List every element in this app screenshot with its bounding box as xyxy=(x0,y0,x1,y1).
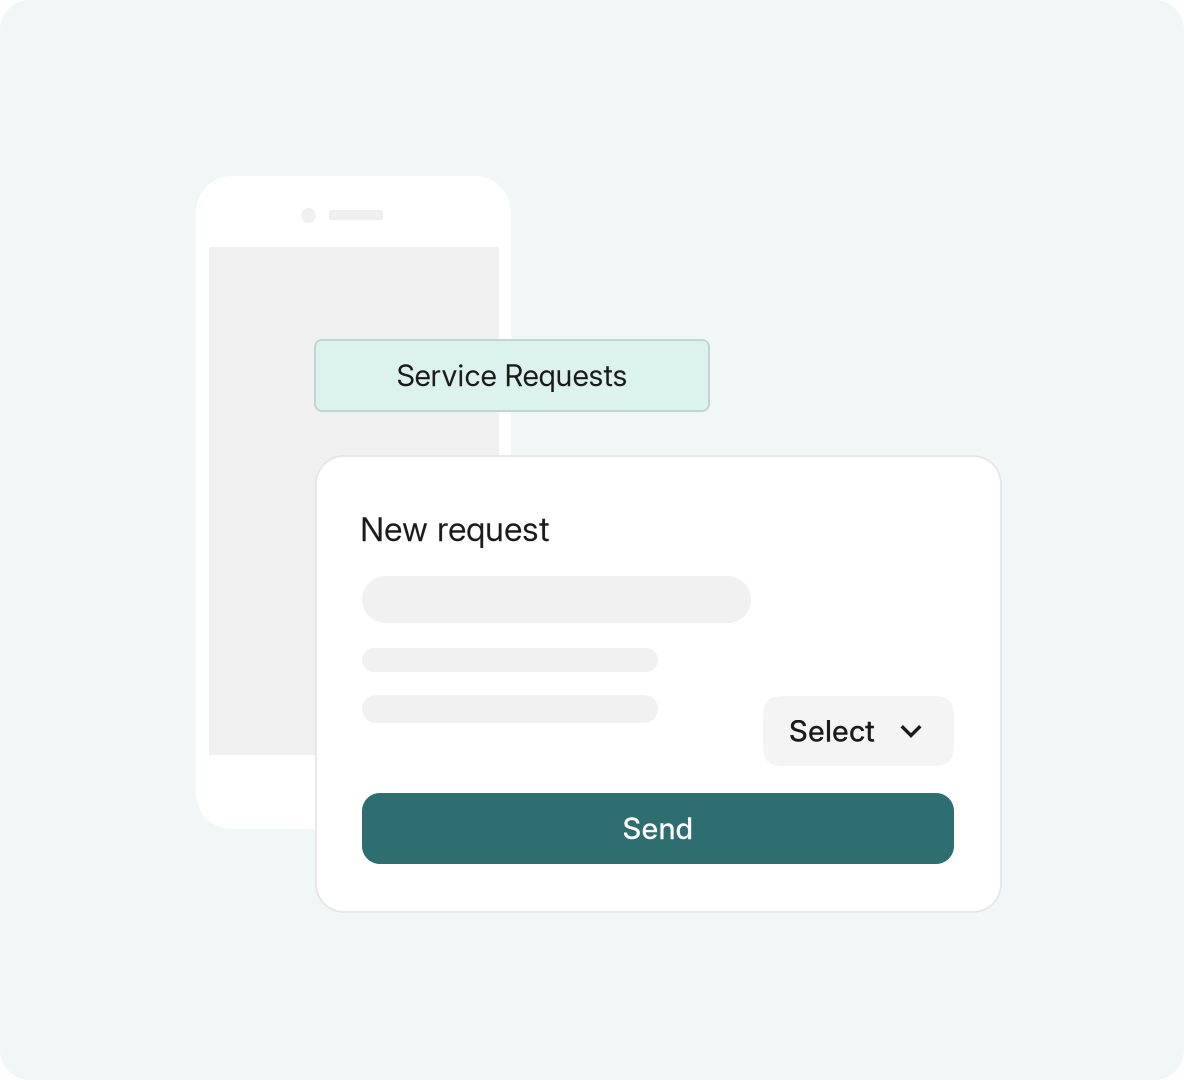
staticText: Select xyxy=(789,713,875,749)
button[interactable]: Send xyxy=(362,793,954,864)
staticText: New request xyxy=(360,509,550,549)
button[interactable]: Select xyxy=(763,696,954,766)
staticText: Service Requests xyxy=(396,358,627,393)
staticText: Send xyxy=(622,811,693,846)
button[interactable]: Service Requests xyxy=(315,340,709,411)
